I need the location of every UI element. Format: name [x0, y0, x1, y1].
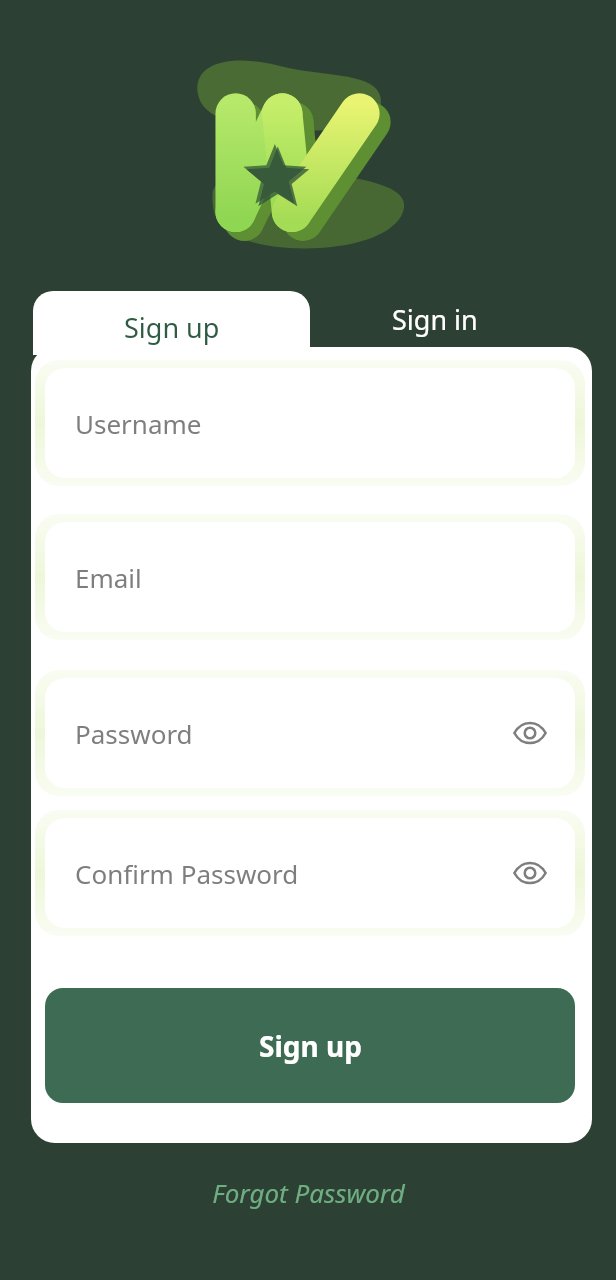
staticText: Confirm Password: [75, 856, 299, 891]
button[interactable]: Email: [45, 522, 575, 632]
button[interactable]: Show password: [507, 710, 553, 756]
button[interactable]: Username: [45, 368, 575, 478]
button[interactable]: Show password: [507, 850, 553, 896]
button[interactable]: Sign up: [33, 291, 310, 355]
staticText: Forgot Password: [212, 1175, 405, 1210]
button[interactable]: Sign in: [330, 292, 540, 346]
staticText: Username: [75, 406, 202, 441]
staticText: Sign in: [392, 301, 478, 338]
staticText: Email: [75, 560, 142, 595]
button[interactable]: Sign up: [45, 988, 575, 1103]
button[interactable]: Confirm Password: [45, 818, 575, 928]
button[interactable]: Forgot Password: [0, 1160, 616, 1224]
staticText: Sign up: [259, 1027, 362, 1065]
staticText: Password: [75, 716, 193, 751]
button[interactable]: Password: [45, 678, 575, 788]
staticText: Sign up: [124, 309, 220, 346]
